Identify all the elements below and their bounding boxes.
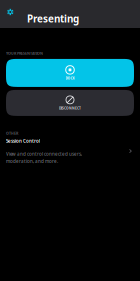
button[interactable]: Settings (7, 9, 14, 15)
button[interactable]: DISCONNECT (6, 90, 134, 116)
staticText: Presenting (27, 12, 79, 25)
staticText: moderation, and more. (6, 158, 58, 164)
staticText: View and control connected users, (6, 151, 82, 157)
button[interactable]: DOCK (6, 59, 134, 87)
staticText: YOUR PRESENTATION (6, 51, 43, 56)
staticText: Session Control (6, 138, 40, 144)
staticText: OTHER (6, 131, 18, 136)
button[interactable]: Session Control (0, 138, 140, 164)
staticText: DISCONNECT (59, 106, 81, 110)
staticText: DOCK (65, 76, 74, 80)
